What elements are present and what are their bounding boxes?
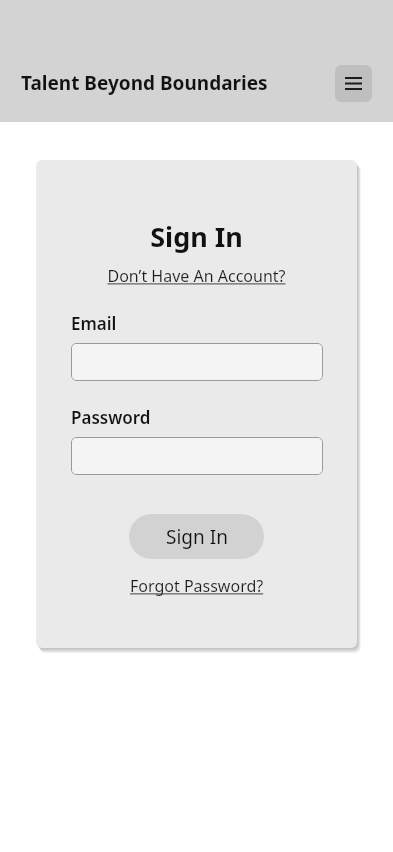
button[interactable] <box>71 343 323 381</box>
staticText: Talent Beyond Boundaries <box>21 70 268 96</box>
button[interactable]: Sign In <box>129 514 264 559</box>
button[interactable]: Forgot Password? <box>130 575 264 597</box>
staticText: Sign In <box>36 218 357 255</box>
staticText: Sign In <box>166 524 228 550</box>
staticText: Password <box>71 406 151 429</box>
button[interactable]: Don’t Have An Account? <box>107 265 286 287</box>
button[interactable] <box>71 437 323 475</box>
staticText: Email <box>71 312 117 335</box>
button[interactable]: Menu <box>335 65 372 102</box>
